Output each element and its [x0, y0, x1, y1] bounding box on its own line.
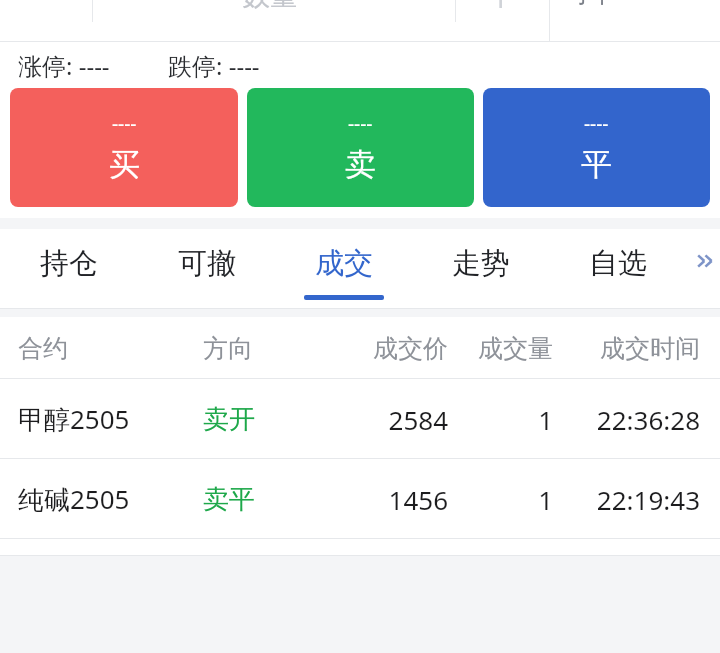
staticText: 甲醇2505 [18, 401, 203, 437]
staticText: 纯碱2505 [18, 481, 203, 517]
staticText: 1 [492, 0, 509, 16]
staticText: 成交时间 [553, 333, 700, 364]
staticText: 卖开 [203, 403, 323, 436]
staticText: 平 [581, 145, 612, 184]
staticText: 方向 [203, 333, 323, 364]
button[interactable]: 走势 [412, 229, 549, 309]
staticText: ---- [584, 111, 609, 137]
staticText: 1456 [323, 482, 448, 517]
button[interactable]: 自选 [549, 229, 686, 309]
button[interactable]: ---- [247, 88, 474, 207]
button[interactable]: More tabs [692, 247, 720, 275]
button[interactable]: 可撤 [138, 229, 275, 309]
button[interactable]: 成交 [275, 229, 412, 309]
staticText: 成交 [315, 245, 373, 282]
staticText: 2584 [323, 402, 448, 437]
staticText: 22:36:28 [553, 402, 700, 437]
staticText: 1 [448, 482, 553, 517]
staticText: 涨停: ---- [18, 49, 110, 82]
staticText: 可撤 [178, 245, 236, 282]
staticText: 成交价 [323, 333, 448, 364]
staticText: 数量 [242, 0, 298, 13]
staticText: 成交量 [448, 333, 553, 364]
button[interactable]: 持仓 [0, 229, 138, 309]
staticText: ---- [348, 111, 373, 137]
staticText: 22:19:43 [553, 482, 700, 517]
staticText: 卖平 [203, 483, 323, 516]
button[interactable]: 甲醇2505 [0, 379, 720, 459]
staticText: 合约 [18, 333, 203, 364]
staticText: ---- [112, 111, 137, 137]
staticText: 走势 [452, 245, 510, 282]
staticText: 自选 [589, 245, 647, 282]
staticText: 1 [448, 402, 553, 437]
staticText: 跌停: ---- [168, 49, 260, 82]
button[interactable]: 纯碱2505 [0, 459, 720, 539]
button[interactable]: ---- [483, 88, 710, 207]
staticText: 可平 [565, 0, 615, 9]
staticText: 持仓 [40, 245, 98, 282]
staticText: 买 [109, 145, 140, 184]
staticText: 卖 [345, 145, 376, 184]
button[interactable]: ---- [10, 88, 238, 207]
